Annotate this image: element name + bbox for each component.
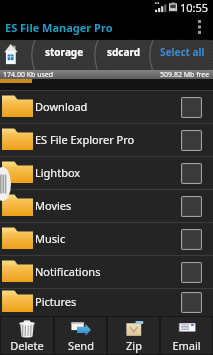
button[interactable]: Select Lightbox	[181, 163, 202, 184]
staticText: Notifications	[35, 264, 181, 279]
staticText: ES File Manager Pro	[5, 20, 113, 35]
button[interactable]: Select Music	[181, 229, 202, 250]
button[interactable]: sdcard	[96, 40, 151, 70]
button[interactable]: ES File Explorer Pro	[0, 124, 213, 156]
button[interactable]: storage	[33, 40, 96, 70]
button[interactable]: Music	[0, 223, 213, 255]
staticText: Pictures	[35, 294, 181, 309]
button[interactable]: Select Pictures	[181, 292, 202, 313]
staticText: Select all	[160, 45, 205, 59]
button[interactable]: Select Notifications	[181, 262, 202, 283]
button[interactable]: Email	[161, 317, 212, 354]
staticText: Send	[68, 338, 94, 353]
button[interactable]: Download	[0, 91, 213, 123]
staticText: Download	[35, 99, 181, 114]
button[interactable]: Notifications	[0, 256, 213, 288]
staticText: Zip	[126, 338, 142, 353]
staticText: 174.00 Kb used	[3, 70, 54, 79]
staticText: Email	[172, 338, 201, 353]
staticText: sdcard	[107, 45, 141, 59]
button[interactable]: Select all	[151, 40, 213, 70]
button[interactable]: Pictures	[0, 289, 213, 316]
staticText: Delete	[10, 338, 44, 353]
button[interactable]: Select Movies	[181, 196, 202, 217]
button[interactable]: Select Download	[181, 97, 202, 118]
button[interactable]: Delete	[1, 317, 53, 354]
button[interactable]: Lightbox	[0, 157, 213, 189]
button[interactable]: Movies	[0, 190, 213, 222]
staticText: 10:55	[180, 0, 209, 14]
staticText: Movies	[35, 198, 181, 213]
button[interactable]: More options	[192, 17, 206, 37]
staticText: ES File Explorer Pro	[35, 132, 181, 147]
button[interactable]: Home	[0, 40, 24, 70]
staticText: Lightbox	[35, 165, 181, 180]
staticText: 509.82 Mb free	[160, 70, 210, 79]
button[interactable]: Select ES File Explorer Pro	[181, 130, 202, 151]
staticText: storage	[45, 45, 84, 59]
button[interactable]: Send	[55, 317, 106, 354]
button[interactable]: Zip	[108, 317, 159, 354]
staticText: Music	[35, 231, 181, 246]
